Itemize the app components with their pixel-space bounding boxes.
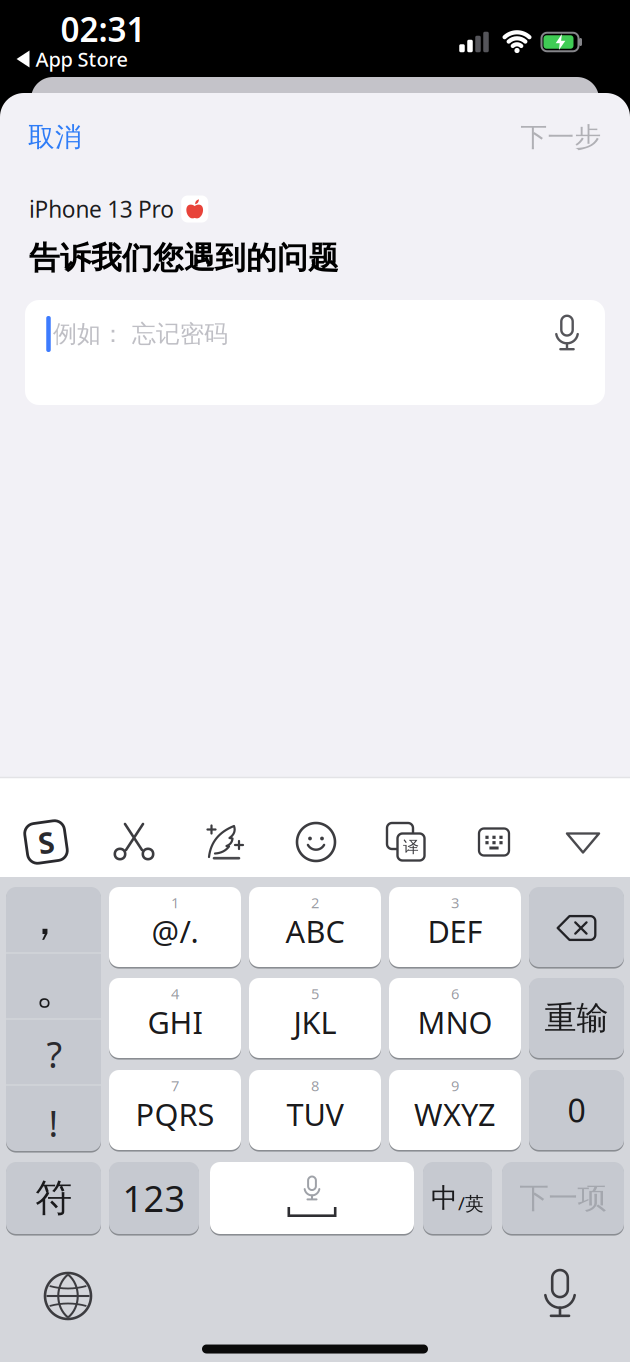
staticText: iPhone 13 Pro (29, 194, 174, 224)
staticText: 符 (35, 1175, 72, 1221)
staticText: ! (48, 1099, 58, 1147)
staticText: 9 (451, 1076, 459, 1095)
staticText: WXYZ (414, 1094, 496, 1134)
staticText: 译 (403, 837, 419, 857)
staticText: 告诉我们您遇到的问题 (29, 239, 339, 277)
staticText: 8 (311, 1076, 319, 1095)
button[interactable]: ABC (249, 886, 381, 968)
button[interactable]: JKL (249, 977, 381, 1059)
button[interactable]: 手写 (206, 823, 244, 861)
staticText: 4 (171, 984, 179, 1003)
button[interactable]: 取消 (28, 121, 82, 153)
staticText: ? (46, 1030, 62, 1078)
button[interactable]: 翻译 (385, 821, 427, 863)
button[interactable]: TUV (249, 1069, 381, 1151)
staticText: 下一项 (519, 1180, 606, 1216)
button[interactable]: WXYZ (389, 1069, 521, 1151)
staticText: JKL (293, 1002, 336, 1042)
staticText: ABC (285, 911, 344, 951)
staticText: MNO (417, 1002, 492, 1042)
staticText: 中 (431, 1182, 458, 1214)
button[interactable]: MNO (389, 977, 521, 1059)
staticText: 下一步 (520, 121, 601, 153)
button[interactable]: 123 (109, 1161, 199, 1235)
staticText: App Store (35, 46, 127, 72)
button[interactable]: 听写 (555, 315, 579, 353)
staticText: DEF (427, 911, 482, 951)
staticText: 。 (35, 960, 80, 1016)
button[interactable]: 剪贴板 (113, 823, 155, 861)
button[interactable]: GHI (109, 977, 241, 1059)
staticText: 重输 (544, 998, 608, 1038)
staticText: GHI (147, 1002, 202, 1042)
button[interactable]: DEF (389, 886, 521, 968)
staticText: 2 (311, 893, 319, 912)
staticText: PQRS (135, 1094, 214, 1134)
staticText: S (38, 822, 54, 861)
button[interactable]: 重输 (529, 977, 624, 1059)
staticText: 02:31 (60, 7, 145, 51)
staticText: ， (22, 891, 67, 947)
button[interactable]: 符号 (6, 1161, 101, 1235)
staticText: 取消 (28, 121, 82, 153)
button[interactable]: 切换输入法 (45, 1273, 91, 1319)
button[interactable]: 问题描述输入框 (25, 300, 605, 405)
button[interactable]: 键盘设置 (479, 828, 509, 855)
staticText: 3 (451, 893, 459, 912)
button[interactable]: 删除 (529, 886, 624, 968)
button[interactable]: Back to App Store (16, 46, 127, 72)
button[interactable]: 下一步 (520, 121, 601, 153)
button[interactable]: 标点 (6, 886, 101, 1152)
staticText: 7 (171, 1076, 179, 1095)
button[interactable]: 表情 (297, 823, 335, 861)
staticText: 例如： 忘记密码 (53, 319, 228, 349)
staticText: TUV (286, 1094, 343, 1134)
staticText: 英 (465, 1192, 484, 1215)
staticText: @/. (151, 911, 198, 951)
staticText: 5 (311, 984, 319, 1003)
button[interactable]: @/. (109, 886, 241, 968)
staticText: 6 (451, 984, 459, 1003)
button[interactable]: 中英切换 (423, 1161, 492, 1235)
button[interactable]: 搜狗输入法 (23, 819, 69, 865)
button[interactable]: PQRS (109, 1069, 241, 1151)
button[interactable]: 0 (529, 1069, 624, 1151)
button[interactable]: 空格 (210, 1161, 414, 1235)
button[interactable]: 下一项 (502, 1161, 624, 1235)
staticText: 0 (567, 1089, 585, 1131)
staticText: / (458, 1191, 465, 1215)
staticText: 123 (122, 1174, 185, 1222)
button[interactable]: 收起键盘 (565, 832, 600, 854)
button[interactable]: 语音输入 (544, 1269, 576, 1321)
staticText: 1 (171, 893, 179, 912)
